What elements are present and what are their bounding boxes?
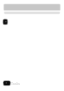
button[interactable]: Card xyxy=(3,19,8,25)
button[interactable]: Add xyxy=(3,80,10,86)
staticText: Tasks xyxy=(11,81,21,86)
